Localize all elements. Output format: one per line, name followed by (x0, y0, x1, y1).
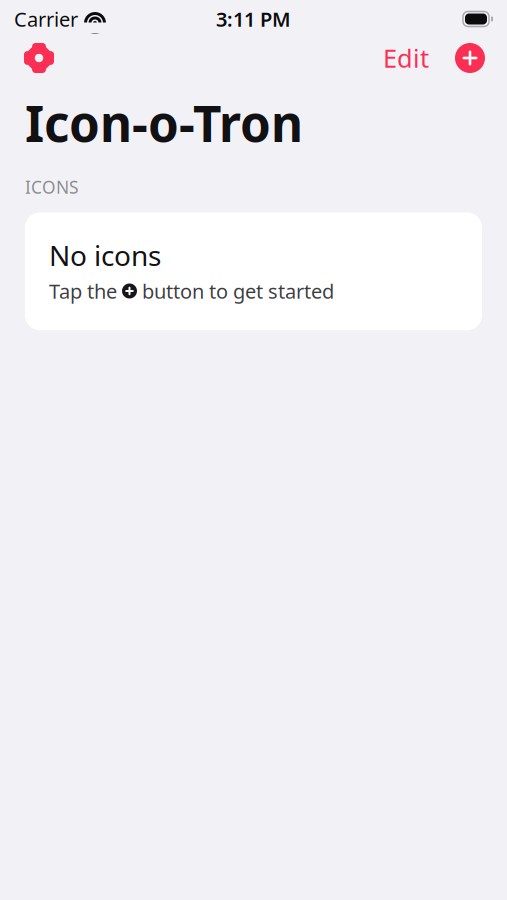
staticText: Icon-o-Tron (25, 90, 303, 155)
button[interactable]: Add icon (435, 37, 489, 79)
staticText: Edit (383, 41, 429, 75)
staticText: No icons (49, 236, 161, 274)
staticText: button to get started (142, 278, 334, 304)
staticText: ICONS (25, 175, 79, 198)
button[interactable]: Edit (377, 35, 435, 81)
staticText: Carrier (14, 6, 78, 32)
staticText: 3:11 PM (216, 6, 291, 32)
button[interactable]: Settings (18, 37, 60, 79)
staticText: Tap the (49, 278, 117, 304)
